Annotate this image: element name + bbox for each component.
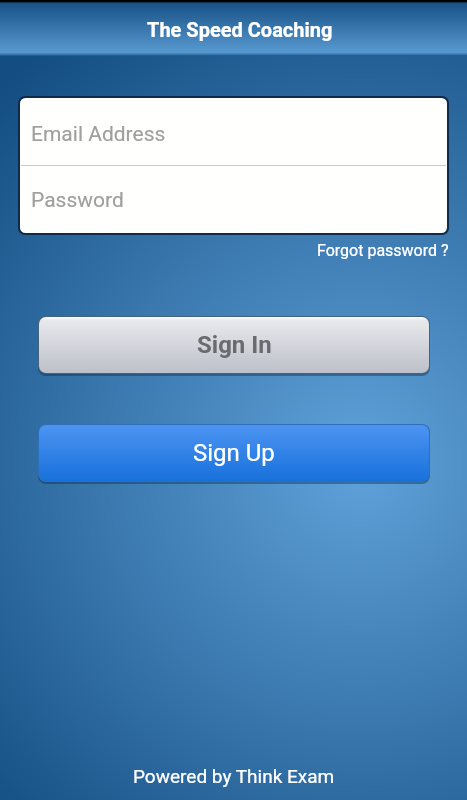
staticText: Email Address [31, 122, 166, 147]
button[interactable]: Sign In [39, 317, 429, 373]
staticText: Sign Up [193, 439, 275, 467]
button[interactable]: Sign Up [39, 425, 429, 481]
button[interactable]: Forgot password ? [290, 237, 449, 263]
staticText: Sign In [197, 331, 272, 359]
staticText: The Speed Coaching [147, 18, 333, 41]
button[interactable]: Password [20, 166, 447, 233]
button[interactable]: Email Address [20, 98, 447, 165]
staticText: Password [31, 188, 124, 213]
staticText: Powered by Think Exam [133, 765, 335, 787]
staticText: Forgot password ? [317, 241, 449, 260]
